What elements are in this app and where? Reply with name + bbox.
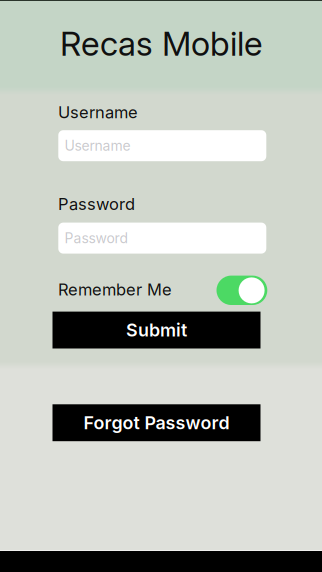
staticText: Forgot Password (83, 412, 229, 433)
staticText: Username (64, 137, 130, 154)
button[interactable]: Forgot Password (52, 404, 260, 441)
staticText: Submit (126, 319, 187, 341)
staticText: Remember Me (58, 279, 172, 299)
button[interactable]: Username (58, 130, 266, 161)
button[interactable]: Remember Me (216, 276, 267, 305)
button[interactable]: Submit (52, 312, 260, 348)
button[interactable]: Password (58, 223, 266, 254)
staticText: Recas Mobile (60, 23, 263, 64)
staticText: Password (58, 194, 135, 214)
staticText: Password (64, 230, 128, 247)
staticText: Username (58, 102, 138, 122)
